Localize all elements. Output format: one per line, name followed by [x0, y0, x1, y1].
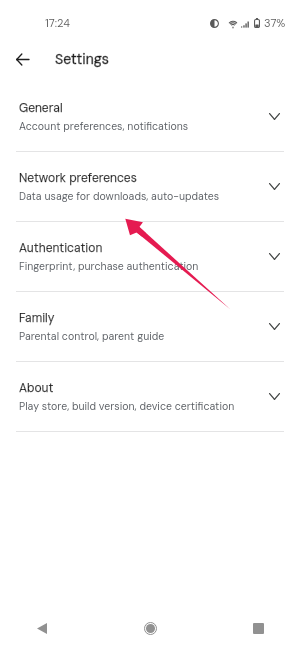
staticText: 17:24 — [45, 16, 71, 30]
staticText: Network preferences — [19, 170, 137, 186]
staticText: Settings — [55, 50, 109, 68]
staticText: Data usage for downloads, auto-updates — [19, 190, 220, 204]
staticText: Family — [19, 310, 55, 326]
staticText: Family — [19, 310, 55, 326]
button[interactable]: Authentication — [0, 222, 300, 291]
staticText: Authentication — [19, 240, 103, 256]
staticText: Settings — [55, 50, 109, 68]
button[interactable]: Back — [6, 43, 38, 75]
button[interactable]: Network preferences — [0, 152, 300, 221]
button[interactable]: Back — [25, 611, 59, 645]
staticText: General — [19, 100, 63, 116]
staticText: Authentication — [19, 240, 103, 256]
button[interactable]: Home — [133, 611, 167, 645]
staticText: Fingerprint, purchase authentication — [19, 260, 199, 274]
staticText: Play store, build version, device certif… — [19, 400, 235, 414]
button[interactable]: About — [0, 362, 300, 431]
staticText: Parental control, parent guide — [19, 330, 165, 344]
button[interactable]: General — [0, 82, 300, 151]
button[interactable]: Family — [0, 292, 300, 361]
staticText: About — [19, 380, 54, 396]
staticText: Network preferences — [19, 170, 137, 186]
button[interactable]: Recent apps — [241, 611, 275, 645]
staticText: General — [19, 100, 63, 116]
staticText: Account preferences, notifications — [19, 120, 189, 134]
staticText: About — [19, 380, 54, 396]
staticText: 37% — [264, 16, 286, 30]
